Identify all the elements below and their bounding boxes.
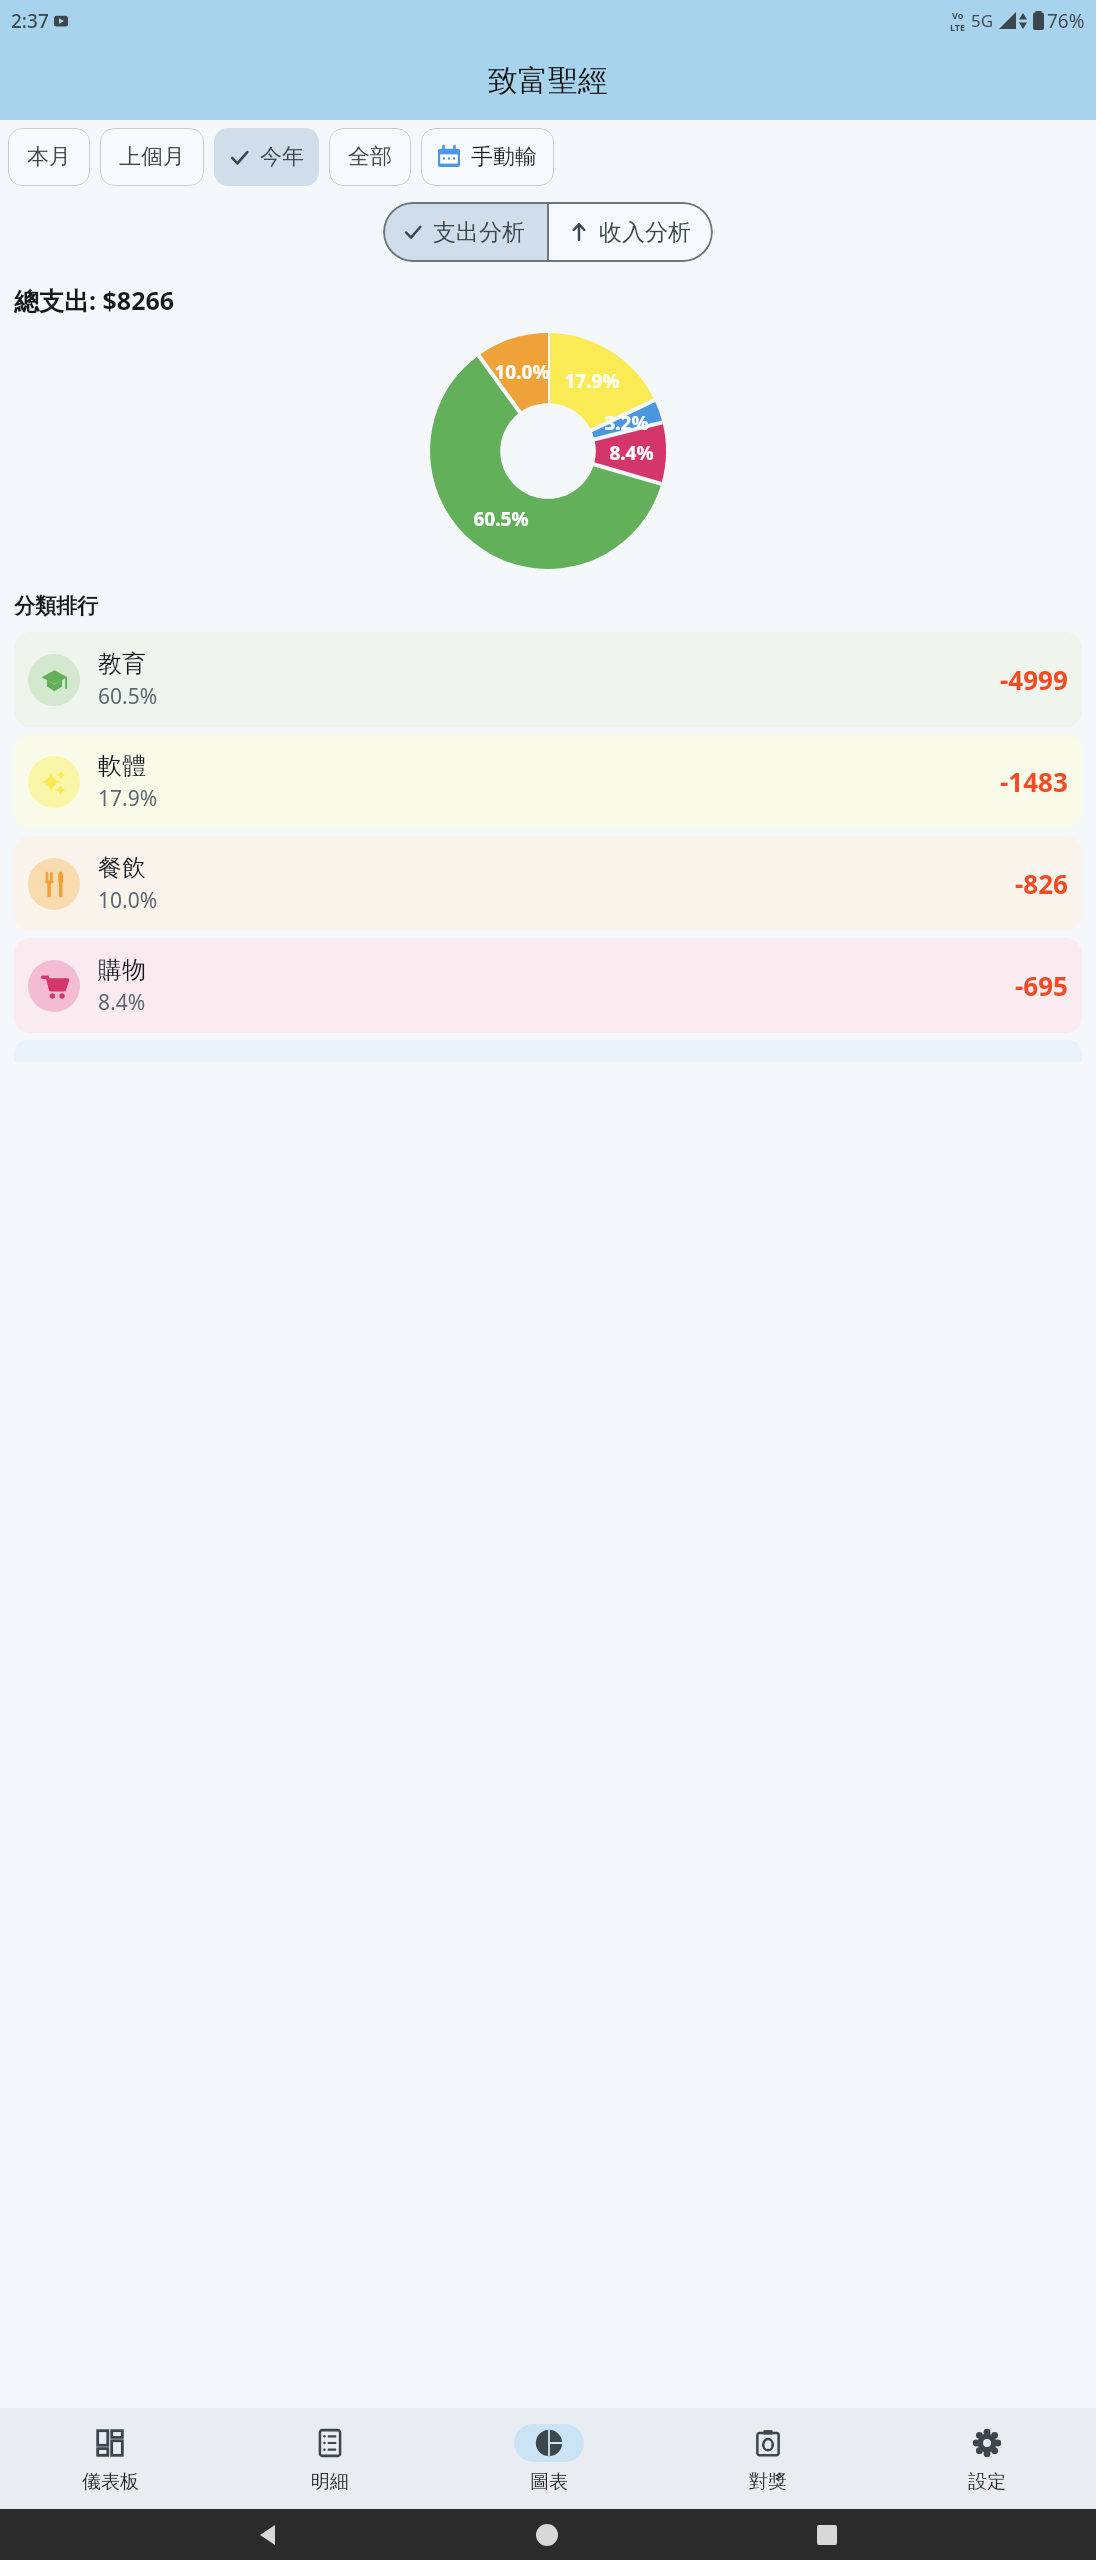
- staticText: 2:37: [11, 8, 49, 34]
- staticText: 收入分析: [599, 218, 691, 247]
- button[interactable]: 對獎: [658, 2408, 877, 2509]
- staticText: 全部: [348, 143, 392, 171]
- staticText: -695: [1015, 968, 1068, 1003]
- button[interactable]: 餐飲: [14, 836, 1082, 931]
- staticText: 教育: [98, 649, 146, 679]
- staticText: 76%: [1047, 8, 1085, 34]
- staticText: 分類排行: [14, 593, 98, 619]
- other: Home: [536, 2524, 558, 2546]
- staticText: -826: [1015, 866, 1068, 901]
- button[interactable]: 支出分析: [383, 202, 547, 262]
- staticText: 總支出: $8266: [14, 283, 175, 317]
- staticText: Vo: [952, 9, 964, 21]
- staticText: 儀表板: [82, 2470, 139, 2494]
- button[interactable]: 今年: [214, 128, 319, 186]
- staticText: 支出分析: [433, 218, 525, 247]
- button[interactable]: 圖表: [439, 2408, 658, 2509]
- staticText: 60.5%: [473, 506, 529, 532]
- staticText: 圖表: [530, 2470, 568, 2494]
- staticText: 明細: [311, 2470, 349, 2494]
- button[interactable]: 設定: [877, 2408, 1096, 2509]
- staticText: -1483: [1000, 764, 1068, 799]
- staticText: 設定: [968, 2470, 1006, 2494]
- button[interactable]: 全部: [329, 128, 411, 186]
- staticText: 17.9%: [98, 784, 158, 813]
- button[interactable]: 儀表板: [0, 2408, 220, 2509]
- staticText: 對獎: [749, 2470, 787, 2494]
- other: Recents: [817, 2525, 837, 2545]
- staticText: 5G: [971, 9, 994, 32]
- staticText: 本月: [27, 143, 71, 171]
- staticText: 17.9%: [564, 368, 620, 394]
- staticText: 10.0%: [494, 359, 550, 385]
- button[interactable]: 教育: [14, 632, 1082, 727]
- button[interactable]: 軟體: [14, 734, 1082, 829]
- staticText: 軟體: [98, 751, 146, 781]
- staticText: 60.5%: [98, 682, 158, 711]
- staticText: 3.2%: [604, 410, 649, 436]
- staticText: LTE: [950, 21, 966, 33]
- staticText: 10.0%: [98, 886, 158, 915]
- button[interactable]: 手動輸: [421, 128, 554, 186]
- button[interactable]: 明細: [220, 2408, 439, 2509]
- button[interactable]: 本月: [8, 128, 90, 186]
- other: Back: [258, 2525, 278, 2545]
- button[interactable]: 購物: [14, 938, 1082, 1033]
- staticText: 購物: [98, 955, 146, 985]
- button[interactable]: 收入分析: [549, 202, 713, 262]
- staticText: 致富聖經: [488, 62, 608, 100]
- staticText: 餐飲: [98, 853, 146, 883]
- staticText: 手動輸: [471, 143, 537, 171]
- staticText: 上個月: [119, 143, 185, 171]
- staticText: -4999: [1000, 662, 1068, 697]
- staticText: 8.4%: [98, 988, 146, 1017]
- staticText: 8.4%: [609, 440, 654, 466]
- button[interactable]: 上個月: [100, 128, 204, 186]
- staticText: 今年: [260, 143, 304, 171]
